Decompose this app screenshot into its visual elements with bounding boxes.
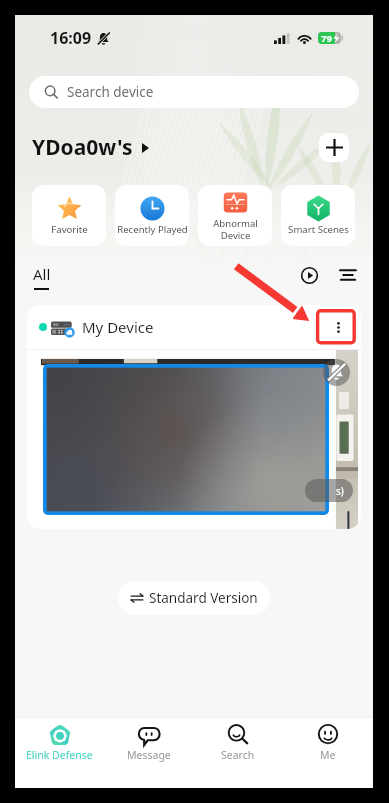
button[interactable]: Message	[104, 718, 193, 788]
staticText: 79	[321, 32, 332, 44]
button[interactable]: Recently Played	[115, 185, 189, 246]
button[interactable]: Mute audio	[323, 359, 350, 386]
staticText: All	[33, 264, 51, 284]
button[interactable]: More options	[325, 314, 351, 340]
staticText: Message	[127, 748, 171, 762]
button[interactable]: Search	[193, 718, 283, 788]
button[interactable]: Standard Version	[118, 581, 270, 615]
staticText: Favorite	[51, 223, 88, 236]
staticText: s)	[336, 484, 344, 498]
staticText: Smart Scenes	[288, 223, 349, 236]
button[interactable]: Smart Scenes	[281, 185, 355, 246]
staticText: Recently Played	[117, 223, 188, 236]
button[interactable]: Me	[283, 718, 373, 788]
button[interactable]: Abnormal Device	[198, 185, 272, 246]
button[interactable]: YDoa0w's	[32, 133, 149, 162]
staticText: My Device	[82, 317, 154, 337]
staticText: Abnormal Device	[213, 217, 258, 241]
staticText: 16:09	[50, 27, 92, 49]
staticText: Me	[320, 748, 336, 762]
button[interactable]: Sort devices	[336, 263, 360, 287]
staticText: Search device	[67, 83, 154, 101]
button[interactable]: Play all	[297, 263, 321, 287]
staticText: Standard Version	[149, 589, 258, 607]
button[interactable]: Favorite	[32, 185, 106, 246]
button[interactable]: All	[32, 256, 51, 294]
button[interactable]: Search device	[29, 76, 359, 108]
staticText: YDoa0w's	[32, 133, 133, 162]
staticText: Search	[221, 748, 255, 762]
button[interactable]: Elink Defense	[15, 718, 104, 788]
staticText: Elink Defense	[26, 748, 93, 762]
button[interactable]: Add device	[319, 133, 349, 162]
